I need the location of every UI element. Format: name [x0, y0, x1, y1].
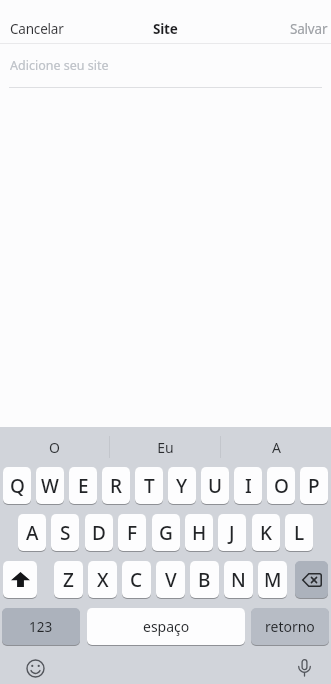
staticText: K: [260, 520, 273, 546]
button[interactable]: [26, 659, 45, 678]
staticText: A: [272, 438, 281, 457]
staticText: L: [294, 520, 305, 546]
button[interactable]: S: [51, 514, 79, 552]
button[interactable]: espaço: [87, 608, 245, 646]
button[interactable]: [3, 561, 37, 599]
staticText: B: [198, 567, 211, 593]
staticText: J: [229, 520, 235, 546]
staticText: R: [110, 473, 123, 499]
staticText: I: [245, 473, 252, 499]
button[interactable]: L: [285, 514, 313, 552]
button[interactable]: Eu: [110, 427, 220, 467]
button[interactable]: I: [234, 467, 262, 505]
button[interactable]: J: [218, 514, 246, 552]
staticText: Salvar: [290, 20, 328, 38]
staticText: Adicione seu site: [10, 57, 109, 74]
button[interactable]: V: [156, 561, 185, 599]
button[interactable]: F: [118, 514, 146, 552]
button[interactable]: H: [185, 514, 213, 552]
button[interactable]: Z: [54, 561, 83, 599]
button[interactable]: G: [152, 514, 180, 552]
button[interactable]: D: [85, 514, 113, 552]
staticText: C: [130, 567, 143, 593]
button[interactable]: Adicione seu site: [0, 44, 331, 87]
button[interactable]: C: [122, 561, 151, 599]
button[interactable]: E: [69, 467, 97, 505]
staticText: V: [165, 567, 177, 593]
button[interactable]: Salvar: [290, 20, 328, 38]
staticText: Y: [176, 473, 188, 499]
staticText: P: [308, 473, 320, 499]
button[interactable]: [295, 561, 328, 599]
staticText: 123: [29, 618, 53, 636]
button[interactable]: O: [267, 467, 295, 505]
button[interactable]: retorno: [251, 608, 329, 646]
button[interactable]: K: [252, 514, 280, 552]
button[interactable]: Q: [3, 467, 31, 505]
button[interactable]: R: [102, 467, 130, 505]
staticText: X: [97, 567, 109, 593]
button[interactable]: P: [300, 467, 328, 505]
staticText: T: [144, 473, 155, 499]
staticText: F: [127, 520, 138, 546]
button[interactable]: Cancelar: [10, 20, 64, 38]
button[interactable]: Y: [168, 467, 196, 505]
staticText: E: [78, 473, 89, 499]
staticText: U: [208, 473, 223, 499]
staticText: retorno: [265, 617, 315, 636]
button[interactable]: U: [201, 467, 229, 505]
button[interactable]: N: [224, 561, 253, 599]
staticText: Z: [63, 567, 74, 593]
staticText: W: [41, 473, 59, 499]
button[interactable]: A: [18, 514, 46, 552]
staticText: M: [264, 567, 282, 593]
button[interactable]: [298, 659, 311, 678]
button[interactable]: X: [88, 561, 117, 599]
staticText: A: [26, 520, 39, 546]
button[interactable]: W: [36, 467, 64, 505]
staticText: H: [192, 520, 207, 546]
button[interactable]: O: [0, 427, 109, 467]
staticText: G: [159, 520, 173, 546]
staticText: O: [49, 438, 60, 457]
button[interactable]: A: [221, 427, 331, 467]
staticText: O: [274, 473, 289, 499]
staticText: S: [60, 520, 71, 546]
button[interactable]: M: [258, 561, 287, 599]
button[interactable]: B: [190, 561, 219, 599]
staticText: D: [92, 520, 106, 546]
staticText: Q: [10, 473, 25, 499]
staticText: N: [231, 567, 246, 593]
staticText: Site: [153, 20, 178, 38]
button[interactable]: 123: [2, 608, 80, 646]
staticText: Eu: [157, 438, 174, 457]
button[interactable]: T: [135, 467, 163, 505]
staticText: espaço: [143, 617, 190, 636]
staticText: Cancelar: [10, 20, 64, 38]
